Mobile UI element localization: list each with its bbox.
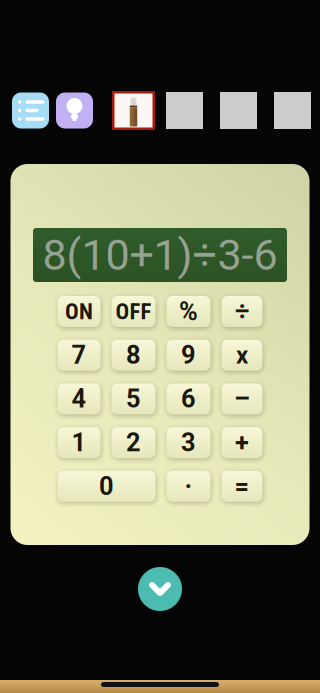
staticText: 8	[126, 340, 141, 370]
staticText: 3	[181, 428, 196, 457]
staticText: 7	[71, 340, 86, 370]
button[interactable]: %	[166, 296, 210, 327]
button[interactable]: 9	[166, 340, 210, 371]
staticText: 5	[126, 384, 141, 414]
button[interactable]: =	[221, 471, 262, 502]
button[interactable]: 6	[166, 383, 210, 414]
staticText: 6	[181, 384, 196, 414]
staticText: ON	[65, 298, 93, 325]
staticText: 1	[71, 428, 86, 457]
button[interactable]: +	[221, 427, 262, 458]
button[interactable]: 7	[57, 340, 100, 371]
button[interactable]: ÷	[221, 296, 262, 327]
button[interactable]: Ideas	[56, 92, 93, 128]
button[interactable]: Photo	[112, 91, 155, 130]
button[interactable]: x	[221, 340, 262, 371]
button[interactable]: 3	[166, 427, 210, 458]
button[interactable]: ·	[166, 471, 210, 502]
button[interactable]: 0	[57, 471, 155, 502]
button[interactable]: 2	[111, 427, 155, 458]
button[interactable]: Collapse keyboard	[138, 567, 182, 611]
staticText: =	[234, 471, 249, 501]
button[interactable]: Lists	[12, 92, 49, 128]
staticText: 2	[126, 428, 141, 457]
button[interactable]: ON	[57, 296, 100, 327]
staticText: ·	[184, 471, 192, 501]
button[interactable]: 8	[111, 340, 155, 371]
button[interactable]: –	[221, 383, 262, 414]
staticText: ÷	[235, 297, 249, 326]
staticText: 8(10+1)÷3-6	[42, 230, 277, 280]
staticText: %	[179, 297, 198, 326]
staticText: –	[234, 384, 250, 414]
staticText: x	[236, 341, 248, 369]
button[interactable]: 1	[57, 427, 100, 458]
staticText: 0	[99, 471, 114, 501]
staticText: +	[235, 428, 249, 457]
button[interactable]: 5	[111, 383, 155, 414]
button[interactable]: OFF	[111, 296, 155, 327]
staticText: 4	[71, 384, 86, 414]
staticText: OFF	[115, 298, 151, 325]
staticText: 9	[181, 340, 196, 370]
button[interactable]: 4	[57, 383, 100, 414]
